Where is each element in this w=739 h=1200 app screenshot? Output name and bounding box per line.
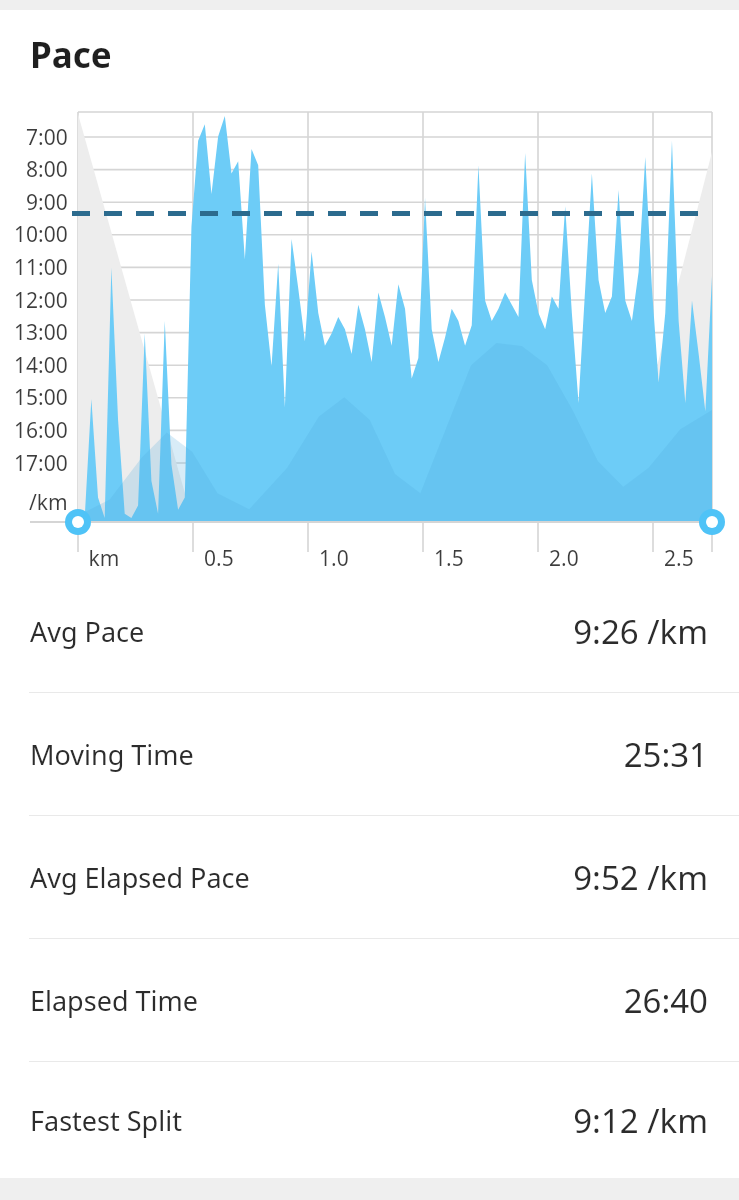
button[interactable]: Avg Elapsed Pace bbox=[0, 816, 739, 938]
staticText: Elapsed Time bbox=[30, 982, 198, 1019]
staticText: Moving Time bbox=[30, 736, 194, 773]
staticText: 9:26 /km bbox=[573, 609, 708, 654]
staticText: 25:31 bbox=[623, 732, 708, 777]
staticText: Pace bbox=[30, 31, 112, 79]
button[interactable]: Fastest Split bbox=[0, 1062, 739, 1178]
button[interactable]: Pace graph bbox=[0, 100, 739, 570]
button[interactable]: Elapsed Time bbox=[0, 939, 739, 1061]
staticText: Avg Pace bbox=[30, 613, 145, 650]
staticText: 26:40 bbox=[623, 978, 708, 1023]
button[interactable]: Moving Time bbox=[0, 693, 739, 815]
staticText: 9:12 /km bbox=[573, 1098, 708, 1143]
button[interactable]: Pace bbox=[0, 10, 739, 100]
staticText: Fastest Split bbox=[30, 1102, 182, 1139]
staticText: Avg Elapsed Pace bbox=[30, 859, 250, 896]
button[interactable]: Avg Pace bbox=[0, 570, 739, 692]
staticText: 9:52 /km bbox=[573, 855, 708, 900]
